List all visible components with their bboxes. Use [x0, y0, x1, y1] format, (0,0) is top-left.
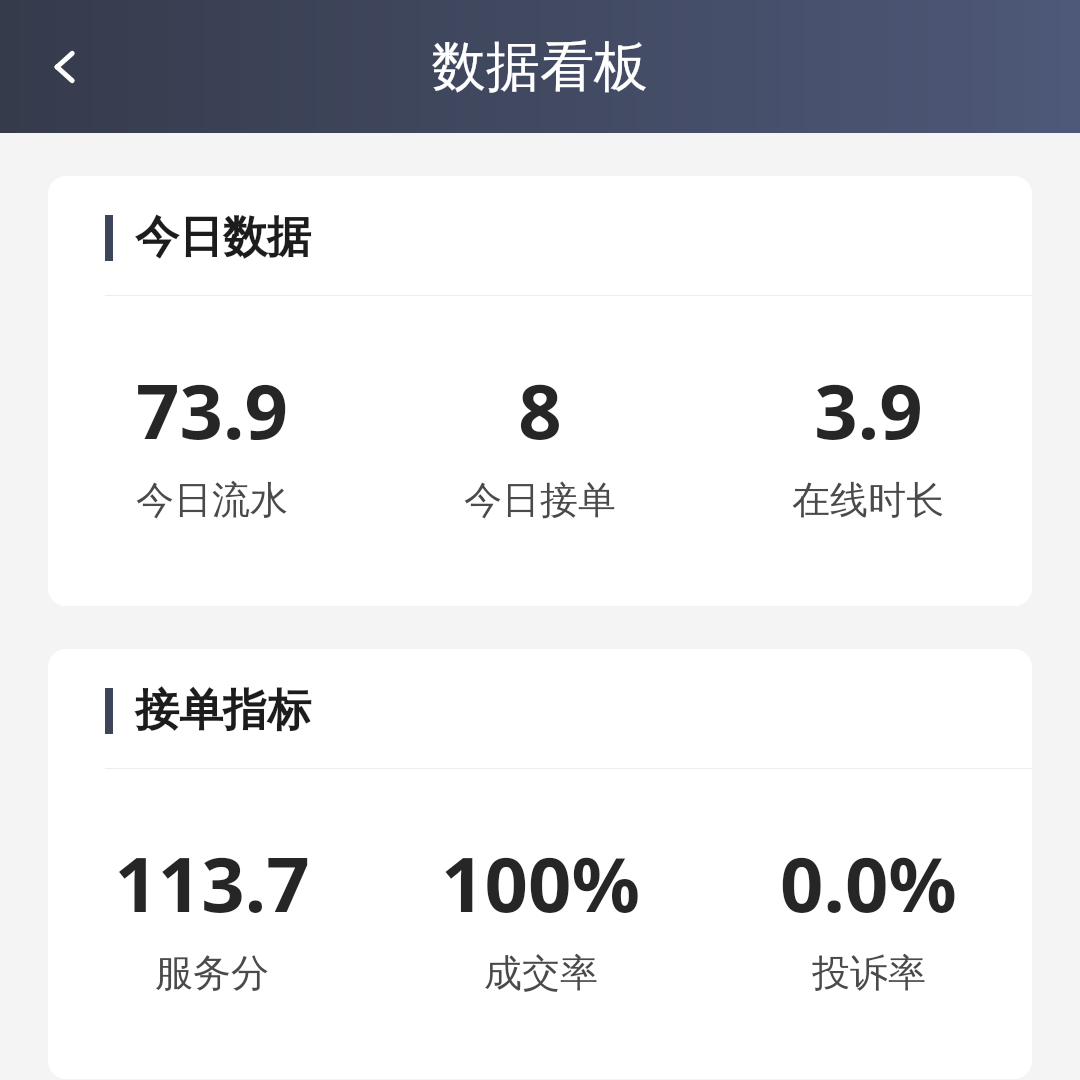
staticText: 8: [518, 358, 562, 462]
button[interactable]: Back: [30, 32, 100, 102]
staticText: 成交率: [484, 949, 598, 997]
staticText: 服务分: [155, 949, 269, 997]
staticText: 73.9: [136, 358, 288, 462]
staticText: 数据看板: [432, 33, 648, 101]
staticText: 0.0%: [780, 831, 957, 935]
staticText: 3.9: [814, 358, 923, 462]
button[interactable]: 今日数据: [48, 176, 1032, 606]
staticText: 在线时长: [792, 476, 944, 524]
staticText: 今日流水: [136, 476, 288, 524]
staticText: 113.7: [114, 831, 310, 935]
staticText: 接单指标: [135, 683, 311, 738]
staticText: 今日接单: [464, 476, 616, 524]
button[interactable]: 接单指标: [48, 649, 1032, 1079]
staticText: 投诉率: [812, 949, 926, 997]
staticText: 今日数据: [135, 210, 311, 265]
staticText: 100%: [441, 831, 640, 935]
